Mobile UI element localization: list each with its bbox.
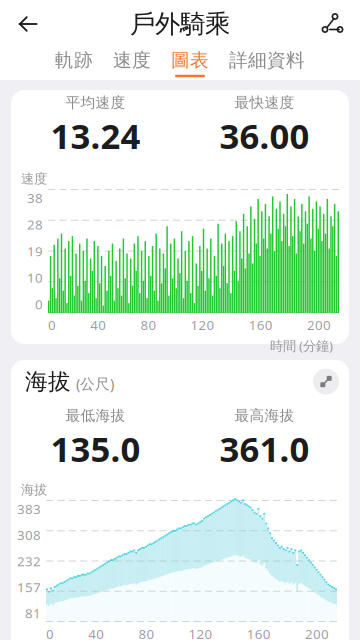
staticText: 135.0 bbox=[50, 426, 140, 472]
staticText: 308 bbox=[17, 526, 41, 544]
staticText: 40 bbox=[88, 625, 104, 640]
staticText: 383 bbox=[17, 500, 41, 518]
staticText: 40 bbox=[90, 316, 106, 334]
staticText: 時間 (分鐘) bbox=[270, 337, 333, 354]
staticText: 海拔 bbox=[25, 368, 71, 395]
staticText: 最快速度 bbox=[234, 94, 294, 112]
staticText: 圖表 bbox=[171, 49, 209, 72]
staticText: 80 bbox=[140, 316, 156, 334]
button[interactable]: 分享路線 bbox=[310, 2, 354, 46]
staticText: 詳細資料 bbox=[229, 49, 305, 72]
staticText: 0 bbox=[48, 316, 56, 334]
staticText: 13.24 bbox=[50, 113, 140, 159]
staticText: 戶外騎乘 bbox=[130, 8, 230, 39]
staticText: 28 bbox=[27, 216, 43, 233]
staticText: 200 bbox=[307, 316, 331, 334]
staticText: 80 bbox=[138, 625, 154, 640]
staticText: 平均速度 bbox=[65, 94, 125, 112]
staticText: 200 bbox=[305, 625, 329, 640]
staticText: 361.0 bbox=[219, 426, 309, 472]
staticText: 10 bbox=[27, 269, 43, 286]
staticText: 19 bbox=[27, 242, 43, 260]
staticText: 速度 bbox=[21, 171, 47, 187]
staticText: 最低海拔 bbox=[65, 407, 125, 425]
button[interactable]: 放大圖表 bbox=[309, 365, 343, 399]
staticText: 157 bbox=[17, 578, 41, 596]
staticText: 160 bbox=[247, 625, 271, 640]
staticText: 0 bbox=[46, 625, 54, 640]
staticText: 160 bbox=[249, 316, 273, 334]
staticText: 81 bbox=[25, 604, 41, 622]
button[interactable]: 返回 bbox=[6, 2, 50, 46]
staticText: 最高海拔 bbox=[234, 407, 294, 425]
button[interactable]: 圖表 bbox=[169, 45, 211, 81]
staticText: 軌跡 bbox=[55, 49, 93, 72]
staticText: 232 bbox=[17, 552, 41, 570]
button[interactable]: 詳細資料 bbox=[227, 45, 307, 81]
staticText: 36.00 bbox=[219, 113, 309, 159]
staticText: 120 bbox=[189, 625, 213, 640]
button[interactable]: 軌跡 bbox=[53, 45, 95, 81]
button[interactable]: 速度 bbox=[111, 45, 153, 81]
staticText: 120 bbox=[191, 316, 215, 334]
staticText: (公尺) bbox=[76, 374, 114, 393]
staticText: 38 bbox=[27, 189, 43, 207]
staticText: 海拔 bbox=[21, 482, 47, 498]
staticText: 0 bbox=[35, 295, 43, 313]
staticText: 速度 bbox=[113, 49, 151, 72]
